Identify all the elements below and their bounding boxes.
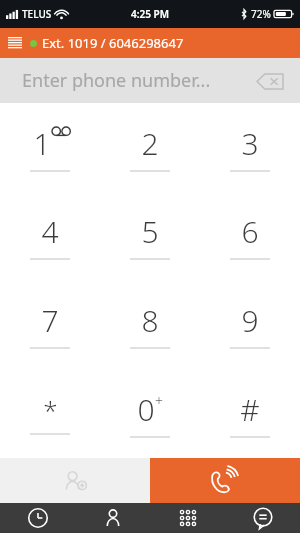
staticText: 5 (141, 211, 159, 252)
button[interactable]: Call (150, 458, 300, 503)
staticText: 8 (141, 300, 159, 341)
button[interactable]: 1 (0, 103, 100, 191)
button[interactable]: Dial pad (150, 503, 225, 533)
staticText: Ext. 1019 / 6046298647 (42, 34, 184, 52)
button[interactable]: 8 (100, 280, 200, 369)
staticText: + (155, 391, 163, 410)
button[interactable]: Add contact (0, 458, 150, 503)
button[interactable]: 6 (200, 191, 300, 280)
staticText: 3 (241, 123, 259, 164)
button[interactable]: 7 (0, 280, 100, 369)
button[interactable]: Messages (225, 503, 300, 533)
staticText: 7 (41, 300, 59, 341)
button[interactable]: Backspace (250, 61, 290, 101)
staticText: 6 (241, 211, 259, 252)
button[interactable]: Contacts (75, 503, 150, 533)
staticText: TELUS (22, 7, 52, 21)
staticText: 1 (33, 123, 51, 164)
staticText: # (240, 389, 260, 430)
staticText: 4 (41, 211, 59, 252)
staticText: * (43, 392, 58, 427)
staticText: Enter phone number... (22, 68, 211, 93)
staticText: 9 (241, 300, 259, 341)
staticText: 0 (137, 389, 155, 430)
button[interactable]: Recent calls (0, 503, 75, 533)
button[interactable]: Open navigation menu (0, 28, 30, 58)
button[interactable]: # (200, 369, 300, 458)
staticText: 2 (141, 123, 159, 164)
staticText: 4:25 PM (131, 7, 169, 21)
button[interactable]: 3 (200, 103, 300, 191)
staticText: 72% (251, 7, 271, 21)
button[interactable]: * (0, 369, 100, 458)
button[interactable]: 2 (100, 103, 200, 191)
button[interactable]: 4 (0, 191, 100, 280)
button[interactable]: 5 (100, 191, 200, 280)
button[interactable]: 9 (200, 280, 300, 369)
button[interactable]: 0 (100, 369, 200, 458)
